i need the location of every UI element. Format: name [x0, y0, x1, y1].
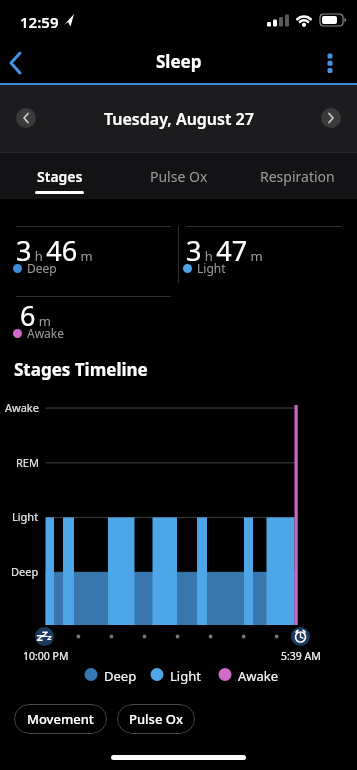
staticText: Light	[197, 260, 226, 276]
button[interactable]	[321, 108, 341, 128]
button[interactable]	[2, 46, 32, 80]
staticText: Awake	[238, 667, 279, 685]
staticText: 3 h 47 m	[186, 232, 263, 269]
staticText: Respiration	[260, 167, 335, 186]
staticText: Sleep	[156, 50, 202, 73]
staticText: Stages Timeline	[14, 358, 148, 381]
button[interactable]: Pulse Ox	[119, 153, 238, 199]
staticText: 6 m	[20, 297, 51, 334]
staticText: REM	[16, 455, 39, 470]
staticText: Pulse Ox	[129, 710, 184, 728]
button[interactable]	[316, 46, 344, 80]
staticText: Awake	[27, 325, 65, 341]
staticText: 3 h 46 m	[16, 232, 93, 269]
staticText: 12:59	[20, 12, 59, 32]
staticText: Light	[12, 509, 39, 524]
staticText: Deep	[27, 260, 57, 276]
button[interactable]: Stages	[0, 153, 119, 199]
button[interactable]: Pulse Ox	[117, 704, 195, 734]
button[interactable]: Respiration	[238, 153, 357, 199]
staticText: Deep	[11, 564, 39, 579]
button[interactable]: Movement	[14, 704, 107, 734]
staticText: Stages	[37, 167, 83, 186]
staticText: Awake	[5, 400, 39, 415]
staticText: 5:39 AM	[281, 649, 321, 663]
button[interactable]	[16, 108, 36, 128]
staticText: Movement	[27, 710, 94, 728]
staticText: Tuesday, August 27	[104, 108, 254, 130]
staticText: 10:00 PM	[23, 649, 69, 663]
staticText: Pulse Ox	[150, 167, 208, 186]
staticText: Deep	[104, 667, 137, 685]
staticText: Light	[170, 667, 201, 685]
